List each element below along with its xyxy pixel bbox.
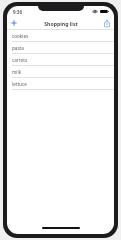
staticText: Shopping list: [44, 20, 78, 27]
staticText: carrots: [12, 57, 28, 63]
button[interactable]: milk: [7, 66, 114, 78]
button[interactable]: carrots: [7, 54, 114, 66]
staticText: 9:36: [13, 9, 22, 15]
button[interactable]: Share: [100, 17, 114, 29]
staticText: cookies: [12, 33, 29, 39]
staticText: milk: [12, 69, 22, 75]
button[interactable]: lettuce: [7, 78, 114, 90]
button[interactable]: pasta: [7, 42, 114, 54]
button[interactable]: cookies: [7, 30, 114, 42]
staticText: pasta: [12, 45, 24, 51]
button[interactable]: Add item: [7, 17, 21, 29]
staticText: lettuce: [12, 81, 27, 87]
